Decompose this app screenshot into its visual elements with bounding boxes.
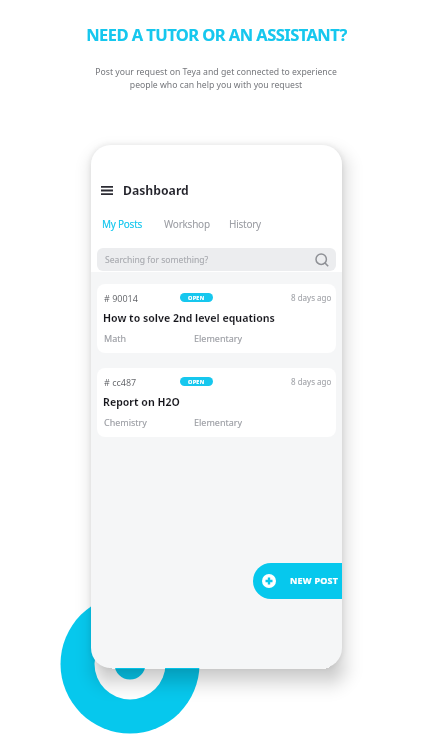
- staticText: 8 days ago: [291, 292, 332, 303]
- staticText: Math: [104, 332, 127, 344]
- staticText: Elementary: [194, 416, 243, 428]
- staticText: History: [229, 217, 261, 231]
- button[interactable]: # 90014: [97, 284, 336, 353]
- staticText: Chemistry: [104, 416, 147, 428]
- staticText: # 90014: [104, 292, 138, 304]
- button[interactable]: Menu: [95, 178, 119, 202]
- staticText: Searching for something?: [105, 254, 209, 266]
- staticText: How to solve 2nd level equations: [103, 311, 275, 325]
- button[interactable]: My Posts: [99, 214, 146, 234]
- button[interactable]: Search: [315, 253, 329, 267]
- staticText: # cc487: [104, 376, 137, 388]
- button[interactable]: Workshop: [161, 214, 213, 234]
- button[interactable]: # cc487: [97, 368, 336, 437]
- button[interactable]: NEW POST: [253, 563, 342, 599]
- staticText: OPEN: [188, 294, 205, 301]
- staticText: Dashboard: [123, 182, 189, 199]
- staticText: Workshop: [164, 217, 210, 231]
- button[interactable]: Searching for something?: [97, 248, 336, 271]
- staticText: NEW POST: [290, 574, 339, 586]
- staticText: 8 days ago: [291, 376, 332, 387]
- staticText: Report on H2O: [103, 395, 180, 409]
- staticText: My Posts: [102, 217, 143, 231]
- staticText: Post your request on Teya and get connec…: [95, 66, 337, 91]
- button[interactable]: History: [226, 214, 264, 234]
- staticText: Elementary: [194, 332, 243, 344]
- staticText: NEED A TUTOR OR AN ASSISTANT?: [86, 23, 347, 45]
- staticText: OPEN: [188, 378, 205, 385]
